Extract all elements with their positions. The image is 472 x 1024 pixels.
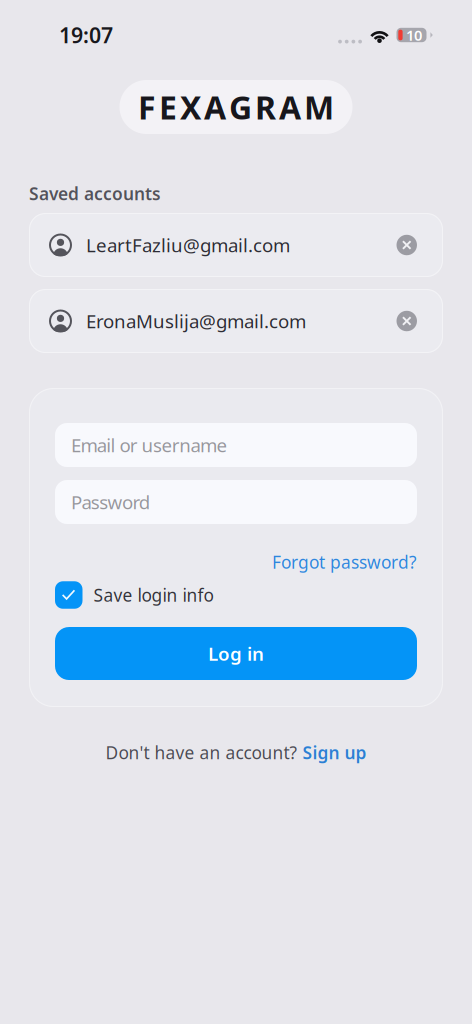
button[interactable]: Sign up <box>302 741 366 764</box>
button[interactable]: Save login info <box>55 581 417 609</box>
staticText: EronaMuslija@gmail.com <box>86 309 306 333</box>
button[interactable]: Log in <box>55 627 417 680</box>
staticText: 10 <box>406 25 422 45</box>
staticText: Save login info <box>93 583 213 606</box>
staticText: Don't have an account? <box>105 741 302 764</box>
staticText: LeartFazliu@gmail.com <box>86 233 290 257</box>
button[interactable]: Forgot password? <box>55 550 417 574</box>
button[interactable]: EronaMuslija@gmail.com <box>29 289 443 353</box>
staticText: Email or username <box>71 433 227 457</box>
staticText: Forgot password? <box>272 550 417 573</box>
staticText: 19:07 <box>59 21 113 49</box>
button[interactable]: LeartFazliu@gmail.com <box>29 213 443 277</box>
staticText: Sign up <box>302 741 366 764</box>
staticText: Log in <box>208 641 264 666</box>
staticText: FEXAGRAM <box>138 86 334 128</box>
staticText: Saved accounts <box>29 182 161 205</box>
staticText: Password <box>71 490 150 514</box>
